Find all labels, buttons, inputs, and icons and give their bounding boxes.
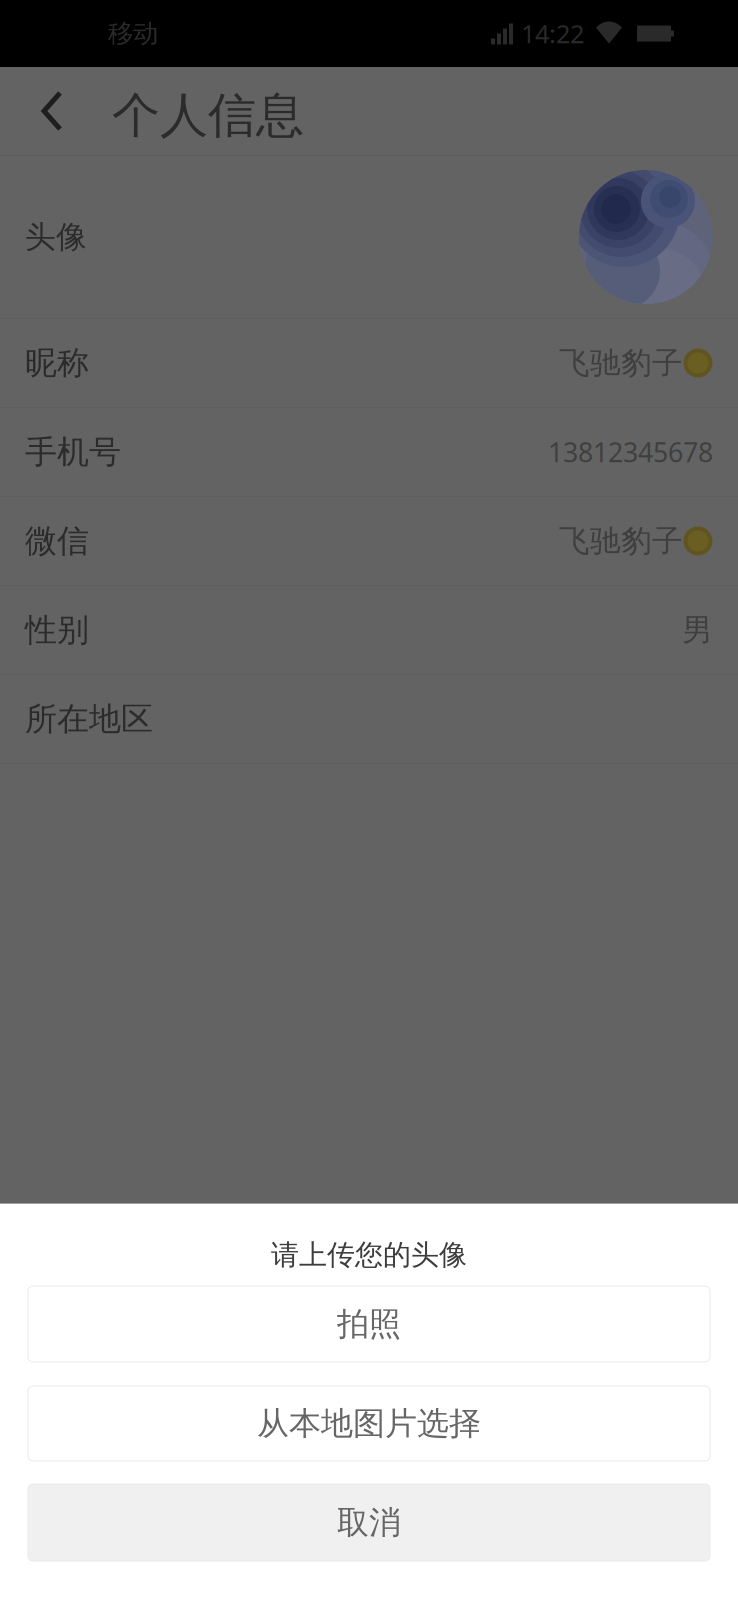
staticText: 手机号 (25, 432, 121, 472)
staticText: 微信 (25, 521, 89, 561)
staticText: 头像 (25, 218, 87, 256)
staticText: 从本地图片选择 (257, 1404, 481, 1443)
staticText: 13812345678 (548, 434, 713, 470)
button[interactable]: 头像 (0, 156, 738, 319)
staticText: 男 (682, 611, 713, 649)
staticText: 飞驰豹子 (559, 344, 683, 382)
staticText: 14:22 (521, 17, 584, 50)
staticText: 个人信息 (112, 86, 304, 145)
button[interactable]: Back (0, 67, 112, 155)
button[interactable]: 所在地区 (0, 675, 738, 764)
staticText: 取消 (337, 1503, 401, 1542)
staticText: 所在地区 (25, 699, 153, 739)
button[interactable]: 微信 (0, 497, 738, 586)
button[interactable]: 取消 (28, 1484, 710, 1561)
button[interactable]: 从本地图片选择 (28, 1386, 710, 1461)
button[interactable]: 性别 (0, 586, 738, 675)
staticText: 昵称 (25, 343, 89, 383)
staticText: 性别 (25, 610, 89, 650)
staticText: 移动 (108, 18, 158, 49)
button[interactable]: 拍照 (28, 1286, 710, 1362)
button[interactable]: 手机号 (0, 408, 738, 497)
staticText: 拍照 (337, 1304, 401, 1344)
staticText: 请上传您的头像 (271, 1238, 467, 1272)
staticText: 飞驰豹子 (559, 522, 683, 560)
button[interactable]: 昵称 (0, 319, 738, 408)
